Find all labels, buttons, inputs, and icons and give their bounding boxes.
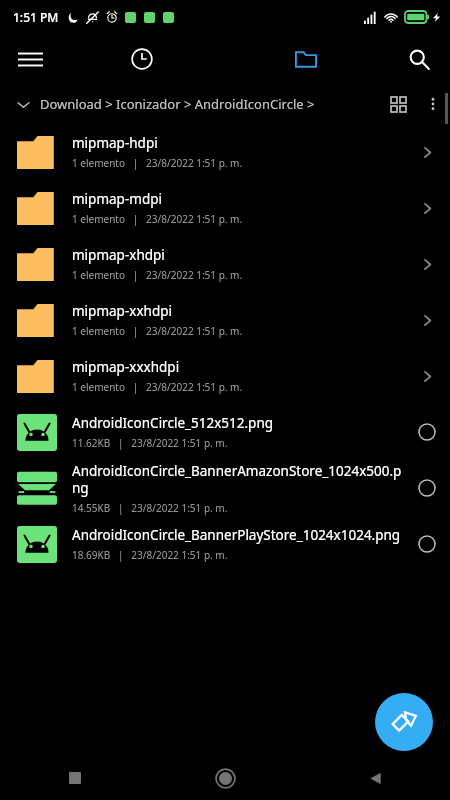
button[interactable]: Search — [388, 34, 450, 84]
button[interactable]: AndroidIconCircle_BannerAmazonStore_1024… — [0, 460, 450, 516]
button[interactable]: Recents — [0, 756, 150, 800]
button[interactable]: Navigation menu — [0, 34, 60, 84]
staticText: 1 elemento | 23/8/2022 1:51 p. m. — [72, 212, 243, 226]
staticText: mipmap-xhdpi — [72, 246, 165, 264]
staticText: 11.62KB | 23/8/2022 1:51 p. m. — [72, 436, 228, 450]
button[interactable]: More options — [416, 84, 450, 124]
button[interactable]: Folders — [224, 34, 388, 84]
staticText: mipmap-xxxhdpi — [72, 358, 180, 376]
staticText: 1 elemento | 23/8/2022 1:51 p. m. — [72, 156, 243, 170]
button[interactable]: AndroidIconCircle_BannerPlayStore_1024x1… — [0, 516, 450, 572]
staticText: 1 elemento | 23/8/2022 1:51 p. m. — [72, 268, 243, 282]
button[interactable]: mipmap-hdpi — [0, 124, 450, 180]
button[interactable]: mipmap-xxhdpi — [0, 292, 450, 348]
button[interactable]: mipmap-mdpi — [0, 180, 450, 236]
staticText: mipmap-mdpi — [72, 190, 162, 208]
staticText: 14.55KB | 23/8/2022 1:51 p. m. — [72, 501, 228, 515]
staticText: 1 elemento | 23/8/2022 1:51 p. m. — [72, 324, 243, 338]
staticText: AndroidIconCircle_BannerAmazonStore_1024… — [72, 462, 404, 497]
staticText: 1:51 PM — [13, 9, 59, 25]
staticText: 1 elemento | 23/8/2022 1:51 p. m. — [72, 380, 243, 394]
button[interactable]: Grid view — [380, 84, 416, 124]
staticText: mipmap-hdpi — [72, 134, 158, 152]
button[interactable]: Recent files — [60, 34, 224, 84]
button[interactable]: Home — [150, 756, 300, 800]
staticText: 18.69KB | 23/8/2022 1:51 p. m. — [72, 548, 228, 562]
button[interactable]: AndroidIconCircle_512x512.png — [0, 404, 450, 460]
button[interactable]: Clean — [375, 693, 433, 751]
button[interactable]: mipmap-xxxhdpi — [0, 348, 450, 404]
staticText: AndroidIconCircle_512x512.png — [72, 414, 274, 432]
button[interactable]: Back — [300, 756, 450, 800]
button[interactable]: Collapse path — [0, 84, 46, 124]
staticText: mipmap-xxhdpi — [72, 302, 172, 320]
button[interactable]: mipmap-xhdpi — [0, 236, 450, 292]
staticText: AndroidIconCircle_BannerPlayStore_1024x1… — [72, 526, 401, 544]
button[interactable]: Download > Iconizador > AndroidIconCircl… — [40, 95, 315, 113]
